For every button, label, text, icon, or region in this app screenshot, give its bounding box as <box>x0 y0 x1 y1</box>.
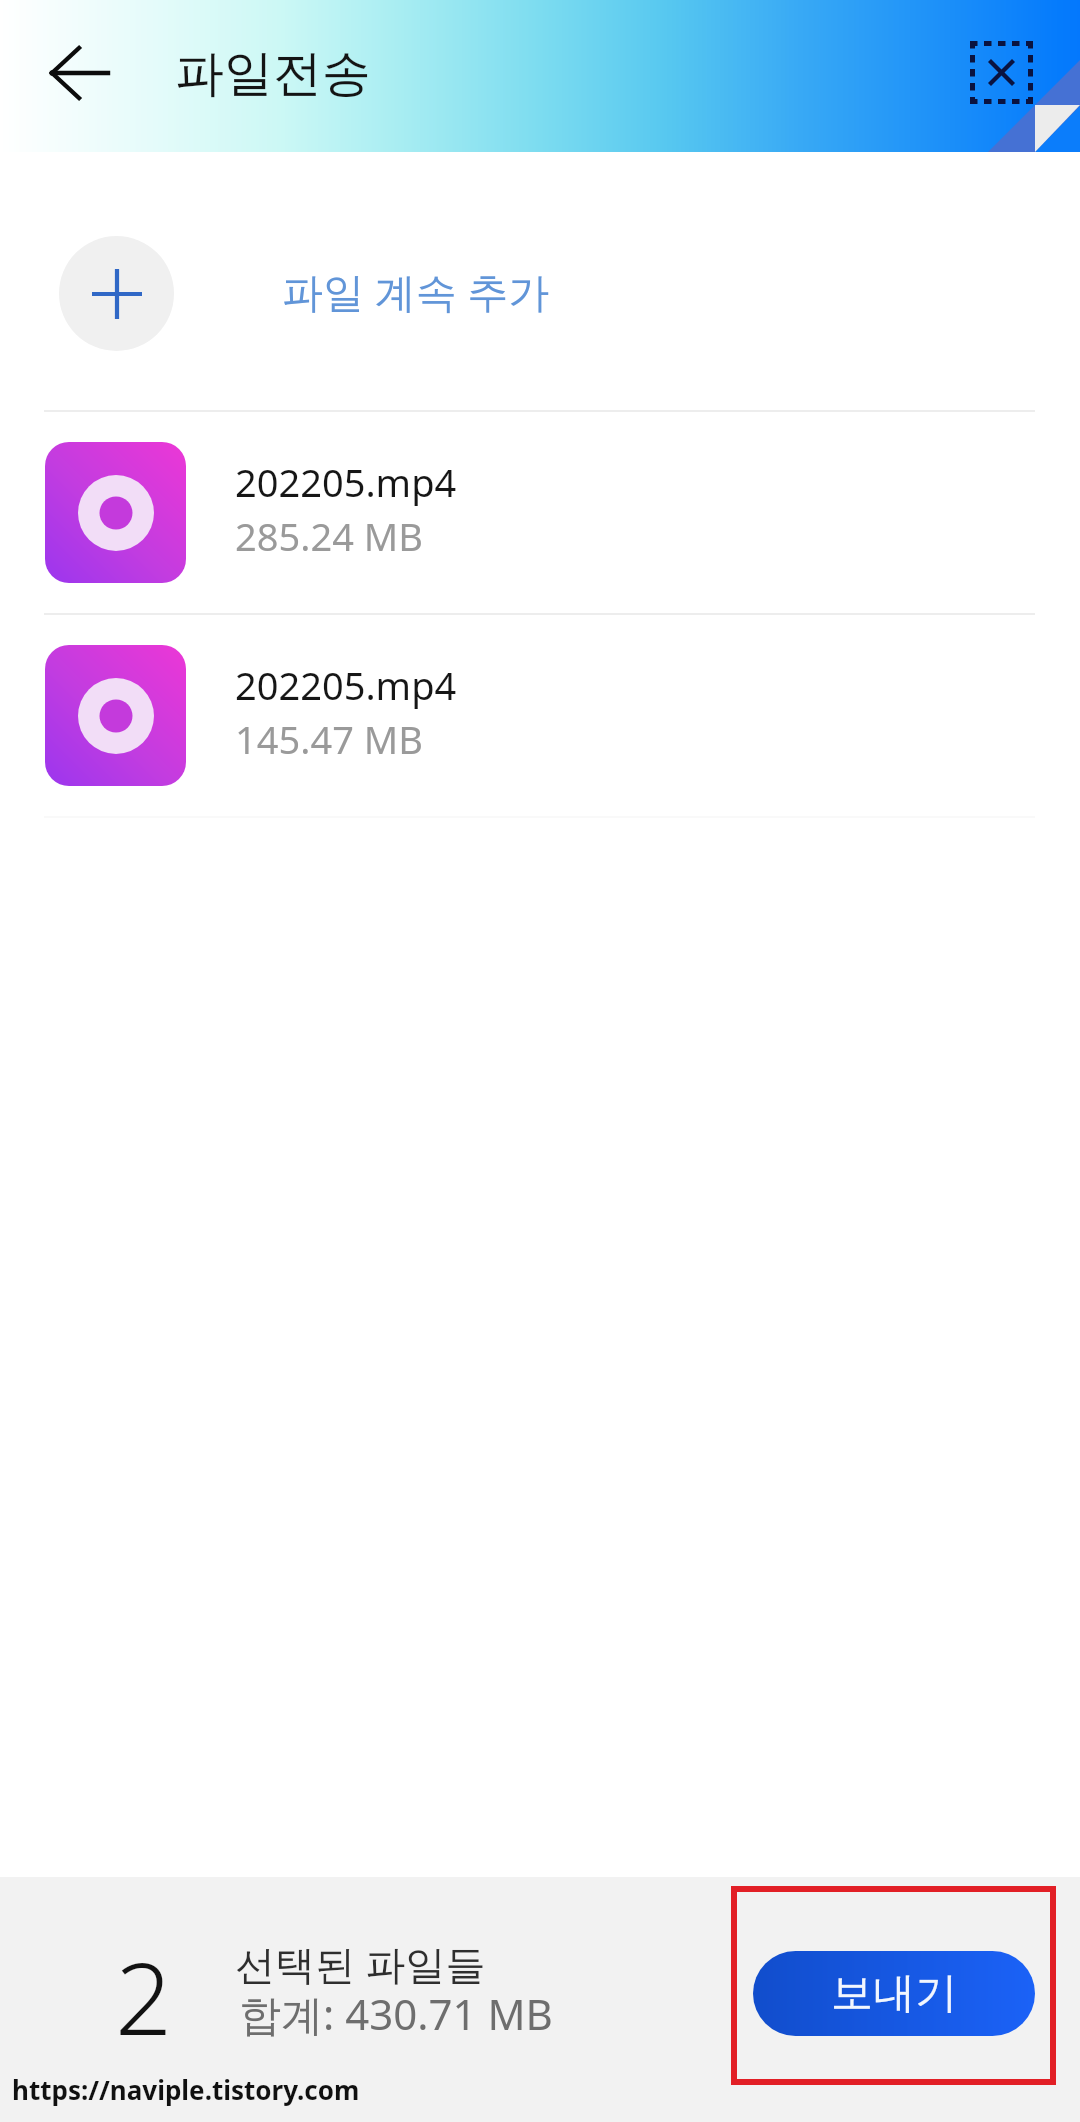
staticText: 합계: 430.71 MB <box>239 1985 553 2042</box>
staticText: https://naviple.tistory.com <box>12 2072 360 2107</box>
staticText: 145.47 MB <box>235 713 423 765</box>
staticText: 285.24 MB <box>235 510 423 562</box>
staticText: 선택된 파일들 <box>235 1936 486 1991</box>
button[interactable]: 보내기 <box>753 1951 1035 2036</box>
button[interactable]: Back <box>16 28 112 124</box>
button[interactable]: 202205.mp4 <box>0 412 1080 613</box>
staticText: 202205.mp4 <box>235 659 457 711</box>
button[interactable]: Close <box>970 41 1033 104</box>
staticText: 파일 계속 추가 <box>282 263 550 319</box>
staticText: 보내기 <box>831 1967 957 2020</box>
staticText: 파일전송 <box>175 43 371 105</box>
button[interactable]: 202205.mp4 <box>0 615 1080 816</box>
button[interactable]: 파일 계속 추가 <box>0 152 1080 410</box>
staticText: 202205.mp4 <box>235 456 457 508</box>
staticText: 2 <box>115 1928 173 2064</box>
